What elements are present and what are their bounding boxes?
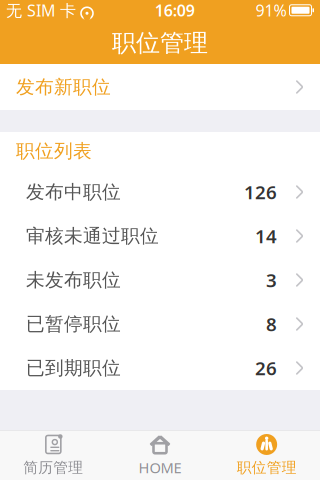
button[interactable]: 发布新职位: [0, 64, 320, 110]
button[interactable]: 简历管理: [0, 431, 107, 479]
staticText: 职位管理: [112, 28, 208, 58]
staticText: 无 SIM 卡: [6, 0, 76, 21]
staticText: 已到期职位: [26, 356, 121, 379]
staticText: 发布中职位: [26, 180, 121, 203]
staticText: 26: [255, 356, 277, 380]
staticText: 职位列表: [16, 139, 92, 162]
staticText: 16:09: [155, 0, 195, 21]
staticText: 8: [266, 312, 277, 336]
staticText: 3: [266, 268, 277, 292]
button[interactable]: 发布中职位: [0, 170, 320, 214]
staticText: HOME: [138, 458, 181, 477]
button[interactable]: 职位管理: [213, 431, 320, 479]
button[interactable]: 未发布职位: [0, 258, 320, 302]
staticText: 14: [255, 224, 277, 248]
button[interactable]: 审核未通过职位: [0, 214, 320, 258]
staticText: 126: [244, 180, 277, 204]
button[interactable]: 已暂停职位: [0, 302, 320, 346]
button[interactable]: HOME: [107, 431, 213, 479]
staticText: 审核未通过职位: [26, 224, 159, 247]
staticText: 职位管理: [237, 458, 297, 476]
staticText: 91%: [255, 0, 286, 21]
staticText: 未发布职位: [26, 268, 121, 291]
staticText: 发布新职位: [16, 75, 111, 98]
button[interactable]: 已到期职位: [0, 346, 320, 390]
staticText: 已暂停职位: [26, 312, 121, 335]
staticText: 简历管理: [23, 458, 83, 476]
